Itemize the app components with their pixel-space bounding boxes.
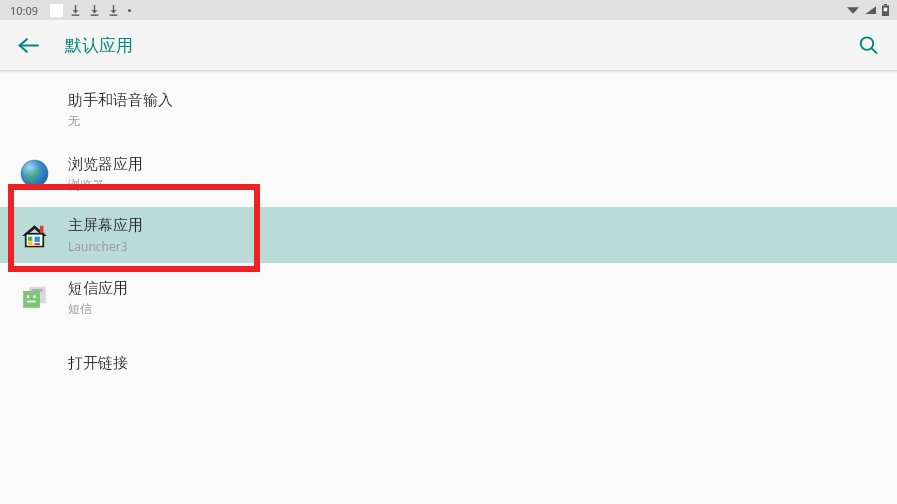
staticText: 主屏幕应用: [68, 216, 143, 235]
staticText: 打开链接: [68, 354, 128, 373]
button[interactable]: 短信应用: [0, 269, 897, 325]
staticText: 浏览器: [68, 177, 104, 192]
button[interactable]: 助手和语音输入: [0, 73, 897, 129]
button[interactable]: Search: [847, 24, 889, 66]
button[interactable]: 浏览器应用: [0, 145, 897, 201]
staticText: 无: [68, 113, 80, 128]
staticText: Launcher3: [68, 238, 128, 254]
button[interactable]: Back: [8, 25, 48, 65]
staticText: 助手和语音输入: [68, 91, 173, 110]
staticText: 短信应用: [68, 279, 128, 298]
staticText: 短信: [68, 301, 92, 316]
staticText: 10:09: [10, 3, 39, 18]
button[interactable]: 打开链接: [0, 343, 897, 383]
staticText: 默认应用: [65, 35, 133, 56]
button[interactable]: 主屏幕应用: [0, 207, 897, 263]
staticText: 浏览器应用: [68, 155, 143, 174]
